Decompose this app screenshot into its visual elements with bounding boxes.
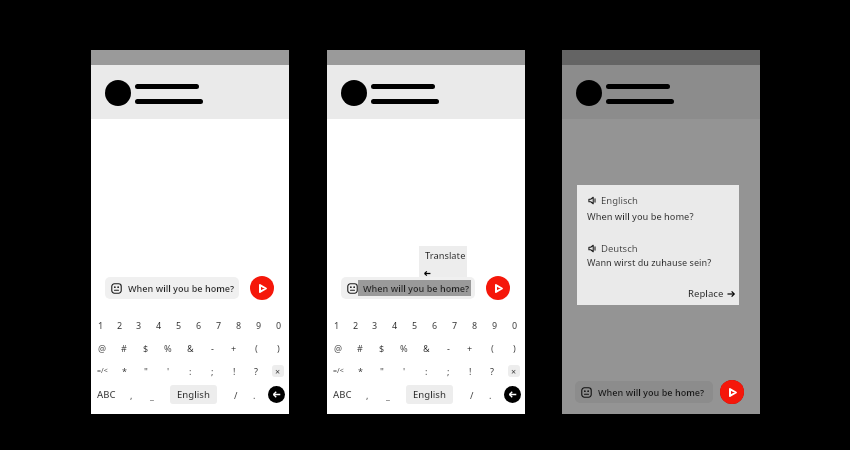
button[interactable]: (	[481, 335, 503, 360]
button[interactable]: )	[267, 335, 289, 360]
button[interactable]: &	[415, 335, 437, 360]
button[interactable]: :	[415, 360, 437, 382]
staticText: Englisch	[601, 194, 638, 207]
button[interactable]: 1	[91, 315, 110, 335]
button[interactable]: When will you be home?	[105, 277, 239, 299]
button[interactable]: ABC	[91, 382, 121, 407]
staticText: _	[386, 389, 390, 401]
staticText: #	[121, 342, 127, 354]
button[interactable]: 4	[149, 315, 169, 335]
button[interactable]: *	[113, 360, 135, 382]
button[interactable]: Backspace	[504, 386, 521, 403]
button[interactable]: $	[135, 335, 157, 360]
button[interactable]: When will you be home?	[341, 277, 475, 299]
button[interactable]: /	[226, 382, 245, 407]
button[interactable]: Delete	[272, 365, 284, 377]
button[interactable]: ABC	[327, 382, 357, 407]
button[interactable]: 0	[269, 315, 289, 335]
button[interactable]: 2	[346, 315, 365, 335]
button[interactable]: When will you be home?	[575, 381, 713, 403]
button[interactable]: !	[459, 360, 481, 382]
button[interactable]: Send	[486, 276, 510, 300]
button[interactable]: Conversation header	[562, 65, 760, 119]
button[interactable]: 2	[110, 315, 129, 335]
staticText: 8	[472, 319, 478, 331]
button[interactable]: Send	[720, 380, 744, 404]
button[interactable]: 9	[249, 315, 269, 335]
staticText: 1	[98, 319, 104, 331]
button[interactable]: 8	[465, 315, 485, 335]
button[interactable]: .	[245, 382, 264, 407]
button[interactable]: =/<	[327, 360, 349, 382]
button[interactable]: !	[223, 360, 245, 382]
button[interactable]: 8	[229, 315, 249, 335]
button[interactable]: 7	[445, 315, 465, 335]
button[interactable]: 3	[129, 315, 149, 335]
staticText: Translate	[425, 249, 466, 262]
button[interactable]: 7	[209, 315, 229, 335]
button[interactable]: _	[142, 382, 161, 407]
button[interactable]: #	[113, 335, 135, 360]
staticText: .	[253, 389, 256, 401]
staticText: =/<	[97, 366, 108, 376]
button[interactable]: 5	[169, 315, 189, 335]
button[interactable]: :	[179, 360, 201, 382]
button[interactable]: -	[201, 335, 223, 360]
button[interactable]: $	[371, 335, 393, 360]
staticText: /	[470, 389, 474, 401]
button[interactable]: _	[378, 382, 397, 407]
button[interactable]: Backspace	[268, 386, 285, 403]
staticText: =/<	[333, 366, 344, 376]
staticText: (	[255, 342, 258, 354]
button[interactable]: "	[135, 360, 157, 382]
button[interactable]: %	[393, 335, 415, 360]
button[interactable]: 9	[485, 315, 505, 335]
button[interactable]: Delete	[508, 365, 520, 377]
button[interactable]: ,	[357, 382, 378, 407]
button[interactable]: )	[503, 335, 525, 360]
button[interactable]: 4	[385, 315, 405, 335]
button[interactable]: .	[481, 382, 500, 407]
staticText: ?	[254, 365, 259, 377]
button[interactable]: =/<	[91, 360, 113, 382]
button[interactable]: @	[327, 335, 349, 360]
button[interactable]: (	[245, 335, 267, 360]
button[interactable]: Replace	[688, 287, 735, 300]
button[interactable]: ;	[437, 360, 459, 382]
button[interactable]: 6	[425, 315, 445, 335]
button[interactable]: #	[349, 335, 371, 360]
button[interactable]: Send	[250, 276, 274, 300]
button[interactable]: 0	[505, 315, 525, 335]
button[interactable]: '	[393, 360, 415, 382]
button[interactable]: '	[157, 360, 179, 382]
button[interactable]: @	[91, 335, 113, 360]
button[interactable]: ,	[121, 382, 142, 407]
button[interactable]: &	[179, 335, 201, 360]
staticText: 7	[216, 319, 222, 331]
button[interactable]: 6	[189, 315, 209, 335]
button[interactable]: /	[462, 382, 481, 407]
button[interactable]: ?	[481, 360, 503, 382]
button[interactable]: -	[437, 335, 459, 360]
staticText: +	[231, 342, 237, 354]
button[interactable]: English	[406, 385, 453, 404]
button[interactable]: ;	[201, 360, 223, 382]
button[interactable]: "	[371, 360, 393, 382]
button[interactable]: %	[157, 335, 179, 360]
staticText: ,	[366, 389, 369, 401]
button[interactable]: +	[459, 335, 481, 360]
button[interactable]: 3	[365, 315, 385, 335]
button[interactable]: Conversation header	[327, 65, 525, 119]
button[interactable]: 5	[405, 315, 425, 335]
button[interactable]: Translate	[419, 246, 467, 280]
staticText: !	[469, 365, 472, 377]
button[interactable]: English	[170, 385, 217, 404]
button[interactable]: Send	[720, 380, 744, 404]
staticText: )	[277, 342, 280, 354]
button[interactable]: ?	[245, 360, 267, 382]
button[interactable]: *	[349, 360, 371, 382]
button[interactable]: 1	[327, 315, 346, 335]
staticText: 4	[392, 319, 398, 331]
button[interactable]: Conversation header	[91, 65, 289, 119]
button[interactable]: +	[223, 335, 245, 360]
